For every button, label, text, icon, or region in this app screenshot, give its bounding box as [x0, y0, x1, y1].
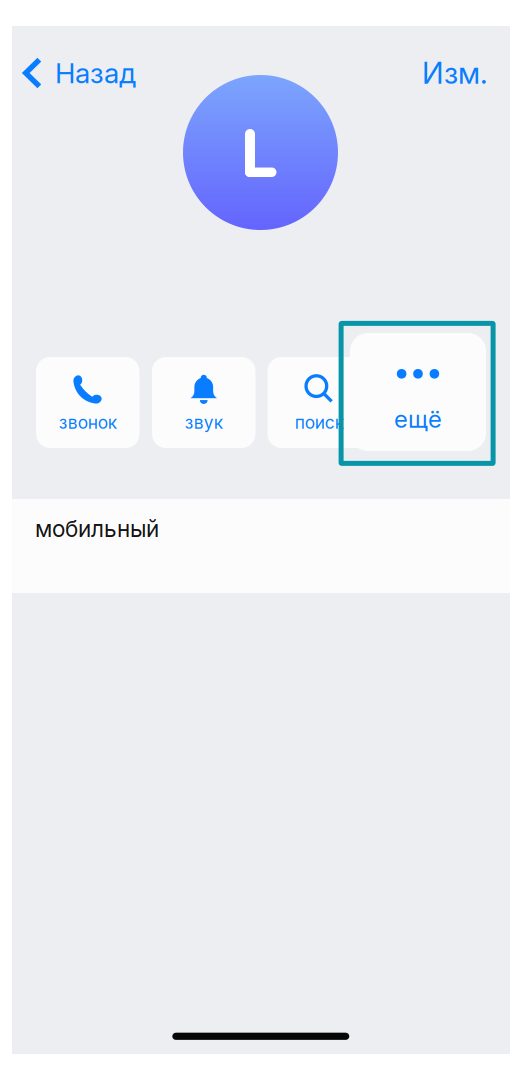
staticText: звук: [185, 412, 223, 433]
staticText: ещё: [394, 405, 442, 434]
staticText: Изм.: [422, 55, 488, 91]
staticText: Назад: [55, 56, 136, 90]
button[interactable]: звонок: [36, 357, 139, 448]
staticText: мобильный: [35, 515, 159, 542]
button[interactable]: ещё: [350, 333, 486, 451]
button[interactable]: звук: [152, 357, 255, 448]
button[interactable]: Изм.: [378, 53, 488, 93]
button[interactable]: Назад: [23, 53, 163, 93]
staticText: звонок: [59, 412, 117, 433]
button[interactable]: поиск: [267, 357, 371, 448]
staticText: поиск: [295, 412, 344, 433]
